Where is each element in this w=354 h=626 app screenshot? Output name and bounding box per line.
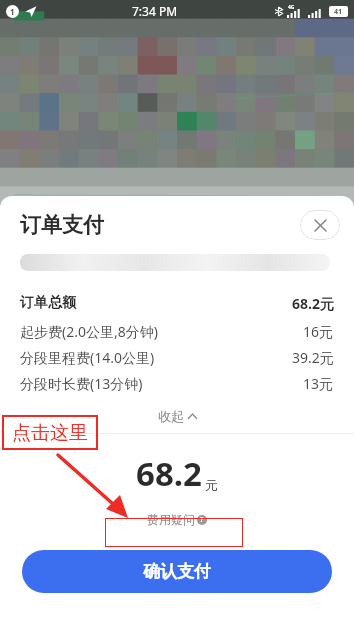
staticText: 16元 <box>303 322 334 341</box>
staticText: 39.2元 <box>292 348 334 367</box>
staticText: 元 <box>205 477 218 493</box>
staticText: 确认支付 <box>143 561 211 582</box>
staticText: 订单支付 <box>20 212 104 238</box>
staticText: 点击这里 <box>12 421 88 445</box>
staticText: 7:34 PM <box>132 3 178 19</box>
button[interactable]: 收起 <box>0 403 354 429</box>
staticText: 费用疑问 <box>147 512 195 527</box>
staticText: 41 <box>334 7 343 17</box>
staticText: 68.2 <box>136 451 202 496</box>
button[interactable]: 确认支付 <box>22 550 332 593</box>
staticText: 起步费(2.0公里,8分钟) <box>20 322 158 341</box>
staticText: ? <box>200 515 204 525</box>
staticText: 订单总额 <box>20 294 76 312</box>
staticText: 分段里程费(14.0公里) <box>20 348 155 367</box>
staticText: 4G <box>288 4 295 11</box>
staticText: 收起 <box>158 408 184 424</box>
staticText: 68.2元 <box>292 294 334 313</box>
staticText: 13元 <box>303 374 334 393</box>
button[interactable]: 费用疑问 <box>108 505 246 534</box>
button[interactable]: 关闭 <box>300 210 340 240</box>
staticText: 分段时长费(13分钟) <box>20 374 143 393</box>
staticText: 1 <box>10 6 15 17</box>
